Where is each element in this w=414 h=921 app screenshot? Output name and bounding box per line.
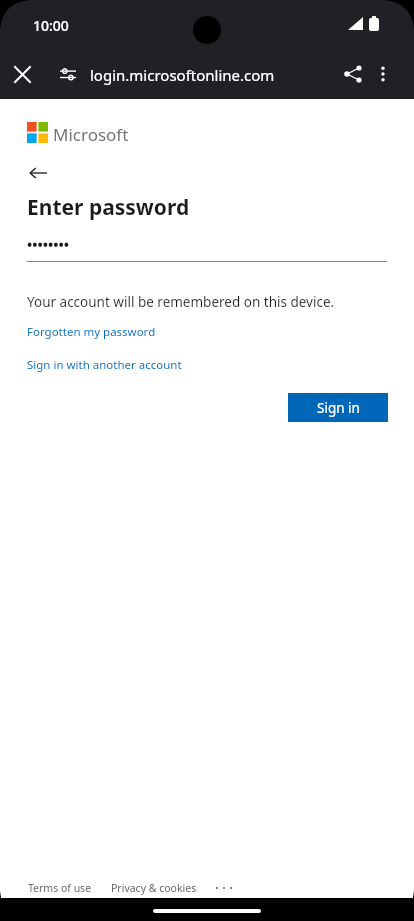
button[interactable]: More options [367,58,399,90]
button[interactable]: More [213,879,235,897]
button[interactable]: Sign in with another account [27,355,182,375]
button[interactable]: Sign in [288,393,388,422]
button[interactable]: Share [337,58,369,90]
button[interactable]: Terms of use [28,881,92,895]
button[interactable]: Site settings [52,58,84,90]
staticText: Microsoft [53,123,129,146]
staticText: Sign in with another account [27,357,182,373]
staticText: •••••••• [27,235,70,254]
staticText: Privacy & cookies [111,881,197,895]
staticText: Forgotten my password [27,324,156,340]
staticText: Terms of use [28,881,92,895]
staticText: Enter password [27,193,190,222]
staticText: Your account will be remembered on this … [27,293,335,311]
staticText: Sign in [317,399,360,417]
button[interactable]: Privacy & cookies [111,881,197,895]
staticText: 10:00 [33,16,69,35]
button[interactable]: Close [6,58,38,90]
button[interactable]: Forgotten my password [27,322,156,342]
staticText: login.microsoftonline.com [90,65,275,85]
button[interactable]: Back [22,157,54,189]
